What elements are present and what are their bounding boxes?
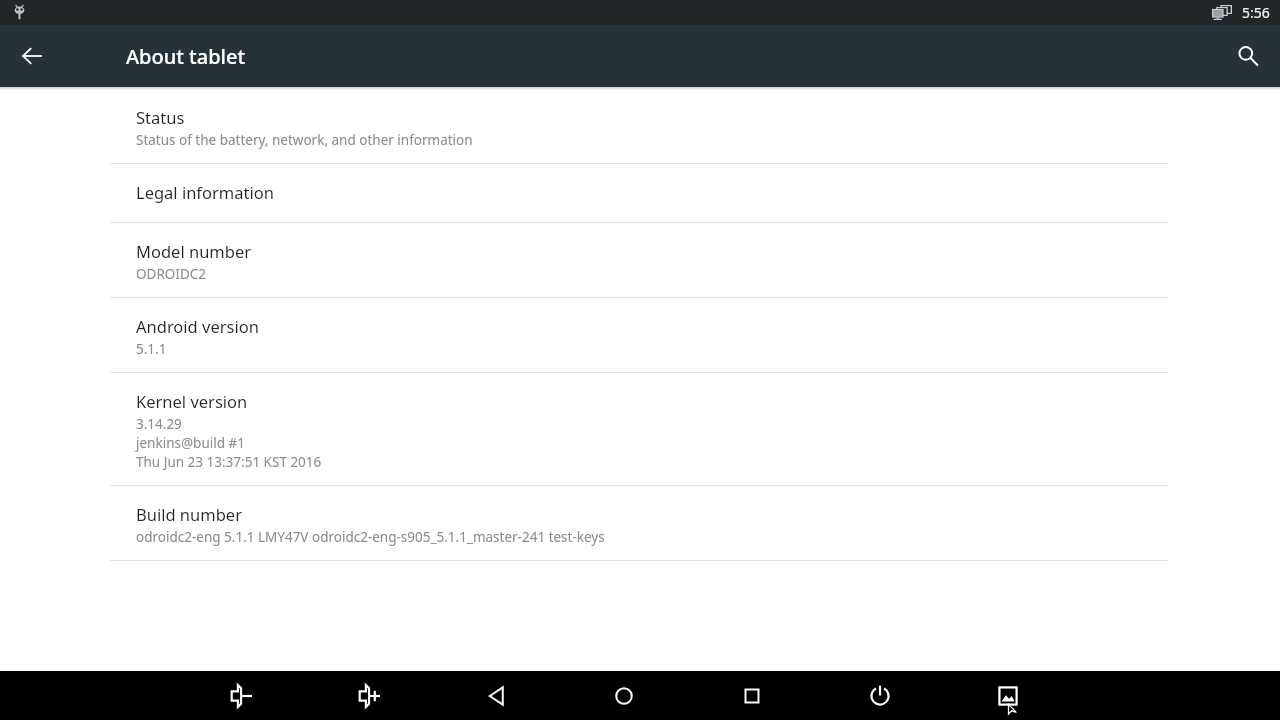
staticText: Status	[136, 106, 185, 128]
staticText: Kernel version	[136, 390, 248, 412]
staticText: Model number	[136, 240, 252, 262]
button[interactable]: Search	[1227, 35, 1269, 77]
staticText: odroidc2-eng 5.1.1 LMY47V odroidc2-eng-s…	[136, 528, 605, 546]
button[interactable]: Volume up	[352, 680, 384, 712]
button[interactable]: Build number	[0, 486, 1280, 560]
button[interactable]: Volume down	[224, 680, 256, 712]
staticText: 5.1.1	[136, 340, 167, 358]
button[interactable]: Android version	[0, 298, 1280, 372]
button[interactable]: Power	[864, 680, 896, 712]
button[interactable]: Back	[480, 680, 512, 712]
button[interactable]: Navigate up	[12, 36, 52, 76]
button[interactable]: Kernel version	[0, 373, 1280, 485]
button[interactable]: Screenshot	[992, 680, 1024, 712]
staticText: jenkins@build #1	[136, 434, 245, 452]
button[interactable]: Legal information	[0, 164, 1280, 222]
staticText: 5:56	[1242, 3, 1270, 22]
staticText: Status of the battery, network, and othe…	[136, 131, 473, 149]
button[interactable]: Home	[608, 680, 640, 712]
button[interactable]: Model number	[0, 223, 1280, 297]
staticText: Thu Jun 23 13:37:51 KST 2016	[136, 453, 322, 471]
staticText: Android version	[136, 315, 259, 337]
other: USB debugging	[12, 5, 27, 20]
staticText: ODROIDC2	[136, 265, 207, 283]
button[interactable]: Recent apps	[736, 680, 768, 712]
button[interactable]: Status	[0, 90, 1280, 163]
staticText: Legal information	[136, 181, 274, 203]
staticText: 3.14.29	[136, 415, 182, 433]
other: Cast screen	[1212, 5, 1232, 20]
staticText: Build number	[136, 503, 242, 525]
staticText: About tablet	[126, 43, 246, 70]
